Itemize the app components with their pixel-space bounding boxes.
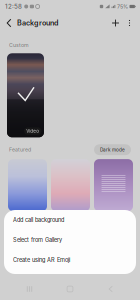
staticText: 75% [117,3,128,10]
staticText: Background [17,19,58,27]
staticText: Featured [9,147,31,153]
staticText: 12:58 [5,3,22,10]
button[interactable]: Select from Gallery [4,230,136,250]
button[interactable]: Featured background 1 [8,159,47,211]
button[interactable]: Custom video background, selected [7,53,44,137]
staticText: Dark mode [100,147,125,152]
button[interactable]: Add call background [4,210,136,230]
button[interactable]: Featured background 2 [51,159,90,211]
button[interactable]: More options [123,14,136,32]
button[interactable]: Create using AR Emoji [4,250,136,270]
button[interactable]: Dark mode [94,144,131,155]
button[interactable]: Add background [108,14,123,32]
staticText: Select from Gallery [13,237,62,243]
staticText: Custom [9,42,29,48]
staticText: Create using AR Emoji [13,257,70,263]
staticText: Video [26,128,39,134]
button[interactable]: Back [1,14,17,32]
staticText: Add call background [13,217,64,223]
button[interactable]: Featured background 3 [94,159,133,211]
